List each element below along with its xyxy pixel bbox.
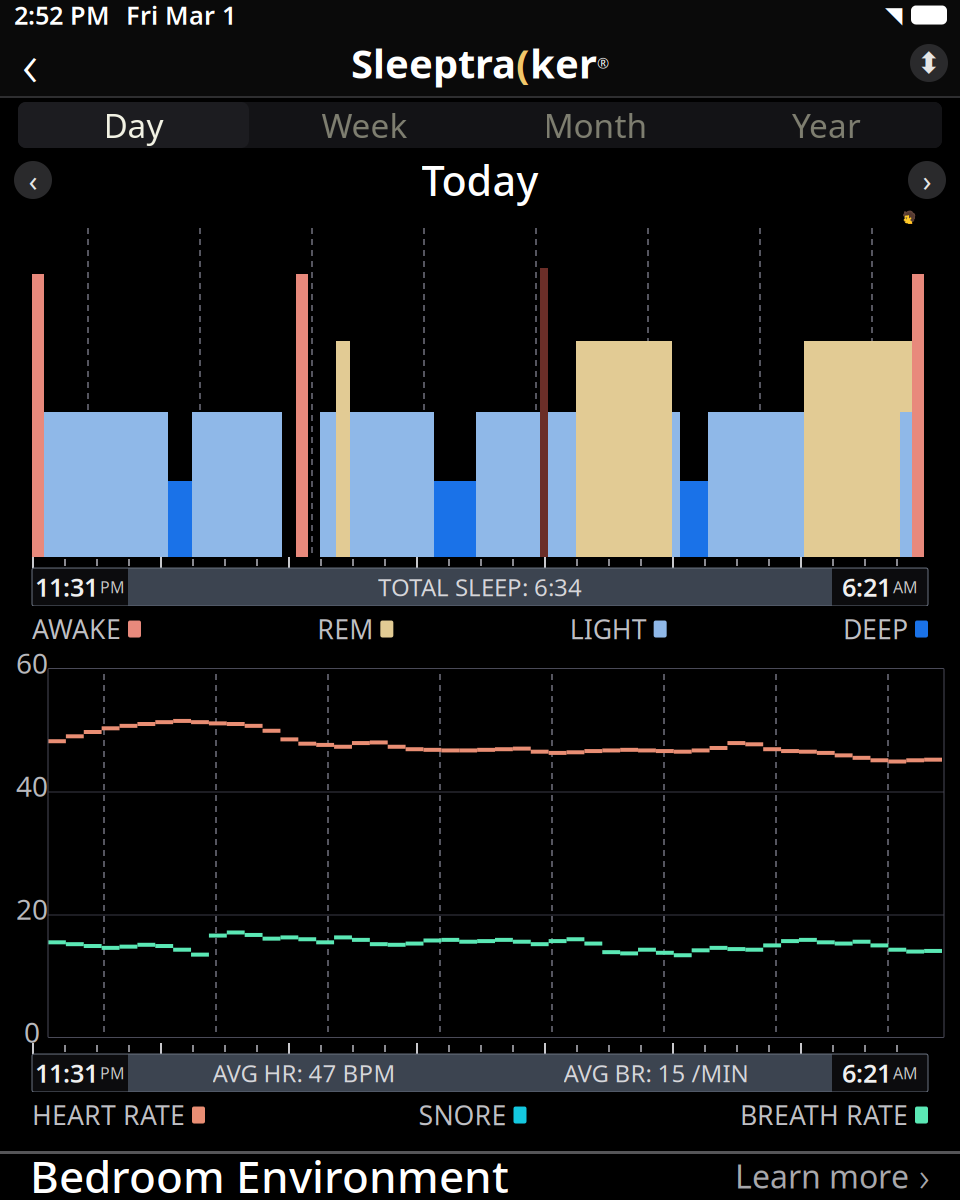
staticText: ker	[530, 36, 597, 89]
staticText: 0	[24, 1013, 40, 1051]
staticText: ›	[922, 160, 931, 199]
staticText: Learn more	[735, 1155, 909, 1197]
staticText: 6:21	[842, 570, 891, 604]
button[interactable]: Month	[480, 102, 711, 148]
staticText: 🚶	[884, 210, 940, 262]
staticText: ◥	[885, 2, 902, 28]
staticText: SNORE	[418, 1097, 506, 1133]
staticText: 20	[16, 890, 48, 928]
staticText: LIGHT	[570, 611, 647, 647]
staticText: ‹	[28, 160, 37, 199]
button[interactable]: Year	[711, 102, 942, 148]
staticText: Week	[321, 103, 407, 147]
staticText: 2:52 PM	[14, 0, 110, 32]
staticText: 11:31	[35, 570, 98, 604]
staticText: Sleeptra	[351, 36, 516, 89]
button[interactable]: Bedroom Environment	[0, 1154, 960, 1198]
button[interactable]: Week	[249, 102, 480, 148]
staticText: REM	[317, 611, 373, 647]
button[interactable]: Previous day	[14, 161, 52, 199]
staticText: AVG BR: 15 /MIN	[563, 1057, 748, 1089]
staticText: 11:31	[35, 1056, 98, 1090]
staticText: Day	[103, 103, 163, 147]
staticText: Fri Mar 1	[126, 0, 236, 32]
staticText: TOTAL SLEEP: 6:34	[378, 571, 582, 603]
staticText: AVG HR: 47 BPM	[212, 1057, 395, 1089]
staticText: AWAKE	[32, 611, 121, 647]
button[interactable]: Next day	[908, 161, 946, 199]
staticText: DEEP	[843, 611, 908, 647]
button[interactable]: Back	[0, 33, 60, 93]
button[interactable]: Change view	[910, 44, 948, 82]
staticText: Month	[543, 103, 647, 147]
staticText: ®	[597, 53, 609, 73]
staticText: BREATH RATE	[740, 1097, 908, 1133]
staticText: 6:21	[842, 1056, 891, 1090]
staticText: ⬍	[916, 46, 941, 80]
staticText: PM	[100, 1062, 125, 1084]
staticText: AM	[893, 576, 918, 598]
staticText: Today	[421, 153, 538, 207]
staticText: HEART RATE	[32, 1097, 185, 1133]
staticText: PM	[100, 576, 125, 598]
staticText: Year	[792, 103, 861, 147]
staticText: AM	[893, 1062, 918, 1084]
staticText: (	[516, 36, 530, 89]
staticText: Bedroom Environment	[30, 1147, 509, 1200]
staticText: 60	[16, 644, 48, 682]
staticText: ›	[919, 1149, 930, 1200]
staticText: 40	[16, 767, 48, 805]
button[interactable]: Day	[18, 102, 249, 148]
staticText: ‹	[22, 22, 38, 104]
